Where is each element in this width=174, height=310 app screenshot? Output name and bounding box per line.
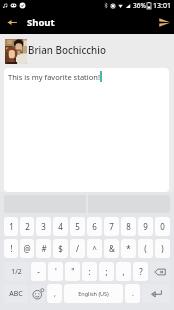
button[interactable]: * [121, 239, 136, 258]
staticText: ^ [92, 243, 97, 254]
button[interactable]: @ [20, 239, 34, 258]
staticText: 7 [109, 221, 114, 232]
button[interactable]: ? [133, 262, 148, 281]
staticText: & [109, 243, 115, 254]
button[interactable]: 9 [138, 217, 153, 236]
button[interactable]: ' [48, 262, 63, 281]
button[interactable]: Back [0, 11, 23, 34]
button[interactable]: ; [99, 262, 114, 281]
button[interactable]: 8 [121, 217, 136, 236]
staticText: * [126, 243, 131, 254]
button[interactable]: English (US) [64, 284, 123, 303]
staticText: 8 [126, 221, 131, 232]
button[interactable]: & [104, 239, 119, 258]
button[interactable]: $ [53, 239, 68, 258]
button[interactable]: Backspace [150, 262, 170, 281]
button[interactable]: Emoji [30, 284, 45, 303]
staticText: 13:01 [153, 1, 171, 11]
button[interactable]: Brian Bochicchio [0, 34, 174, 68]
button[interactable]: / [70, 239, 85, 258]
staticText: English (US) [78, 290, 109, 297]
button[interactable]: - [31, 262, 46, 281]
button[interactable]: ! [4, 239, 18, 258]
button[interactable]: 0 [155, 217, 170, 236]
staticText: This is my favorite station! [8, 72, 100, 82]
staticText: ' [55, 266, 57, 277]
button[interactable]: Enter [142, 284, 170, 303]
button[interactable]: ABC [4, 284, 28, 303]
staticText: $ [58, 243, 63, 254]
button[interactable]: , [47, 284, 62, 303]
button[interactable]: 1/2 [4, 262, 29, 281]
button[interactable]: 7 [104, 217, 119, 236]
staticText: ! [10, 243, 13, 254]
staticText: . [132, 289, 134, 299]
button[interactable]: 2 [20, 217, 34, 236]
button[interactable]: This is my favorite station! [4, 68, 169, 192]
staticText: ) [161, 243, 164, 254]
button[interactable]: : [82, 262, 97, 281]
staticText: , [122, 266, 125, 277]
staticText: 1 [9, 221, 14, 232]
staticText: " [71, 266, 75, 277]
button[interactable]: 4 [53, 217, 68, 236]
staticText: ? [139, 266, 143, 277]
staticText: - [37, 266, 40, 277]
button[interactable]: ) [155, 239, 170, 258]
staticText: ABC [9, 289, 23, 299]
button[interactable]: 5 [70, 217, 85, 236]
button[interactable]: ^ [87, 239, 102, 258]
button[interactable]: 1 [4, 217, 18, 236]
staticText: 6 [92, 221, 97, 232]
staticText: 5 [75, 221, 80, 232]
staticText: 9 [143, 221, 148, 232]
staticText: Brian Bochicchio [28, 44, 106, 57]
button[interactable]: . [125, 284, 140, 303]
staticText: 2 [25, 221, 30, 232]
staticText: : [88, 266, 91, 277]
staticText: , [54, 289, 56, 299]
button[interactable]: , [116, 262, 131, 281]
staticText: 0 [160, 221, 165, 232]
button[interactable]: Send [154, 11, 174, 34]
staticText: / [76, 243, 79, 254]
staticText: # [41, 243, 47, 254]
staticText: ; [105, 266, 108, 277]
button[interactable]: " [65, 262, 80, 281]
button[interactable]: # [36, 239, 51, 258]
button[interactable]: ( [138, 239, 153, 258]
staticText: 3 [41, 221, 46, 232]
staticText: ( [144, 243, 147, 254]
staticText: 1/2 [11, 267, 22, 277]
staticText: Shout [27, 16, 55, 29]
staticText: @ [23, 243, 31, 254]
staticText: 36% [133, 1, 146, 10]
staticText: 4 [58, 221, 63, 232]
button[interactable]: 6 [87, 217, 102, 236]
button[interactable]: 3 [36, 217, 51, 236]
